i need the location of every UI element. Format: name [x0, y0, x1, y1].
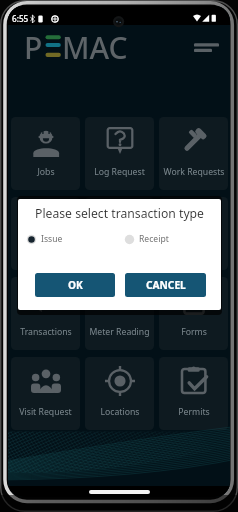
button[interactable]: CANCEL [125, 273, 206, 297]
staticText: Transactions [20, 326, 72, 338]
button[interactable]: Inventory [85, 197, 154, 270]
staticText: OK [68, 278, 83, 292]
staticText: Forms [181, 326, 207, 338]
button[interactable]: Purchase [159, 197, 228, 270]
staticText: CANCEL [146, 278, 186, 292]
button[interactable]: Assets [11, 197, 80, 270]
button[interactable]: OK [35, 273, 115, 297]
staticText: Meter Reading [89, 326, 150, 338]
button[interactable]: Open navigation menu [192, 33, 226, 63]
staticText: P [24, 27, 43, 68]
staticText: Permits [178, 406, 210, 418]
button[interactable]: Permits [159, 357, 228, 430]
staticText: Log Request [94, 166, 145, 178]
staticText: MAC [62, 27, 128, 68]
button[interactable]: Locations [85, 357, 154, 430]
button[interactable]: Log Request [85, 117, 154, 190]
staticText: Locations [100, 406, 140, 418]
staticText: Jobs [37, 166, 55, 178]
staticText: Issue [41, 233, 63, 245]
button[interactable]: Transactions [11, 277, 80, 350]
staticText: Please select transaction type [18, 205, 221, 222]
staticText: Work Requests [163, 166, 225, 178]
button[interactable]: Forms [159, 277, 228, 350]
button[interactable]: Receipt [124, 233, 169, 245]
staticText: 6:55 [12, 13, 29, 24]
button[interactable]: Meter Reading [85, 277, 154, 350]
button[interactable]: Visit Request [11, 357, 80, 430]
button[interactable]: Issue [26, 233, 63, 245]
staticText: Receipt [139, 233, 169, 245]
staticText: Visit Request [19, 406, 72, 418]
button[interactable]: Jobs [11, 117, 80, 190]
button[interactable]: Work Requests [159, 117, 228, 190]
